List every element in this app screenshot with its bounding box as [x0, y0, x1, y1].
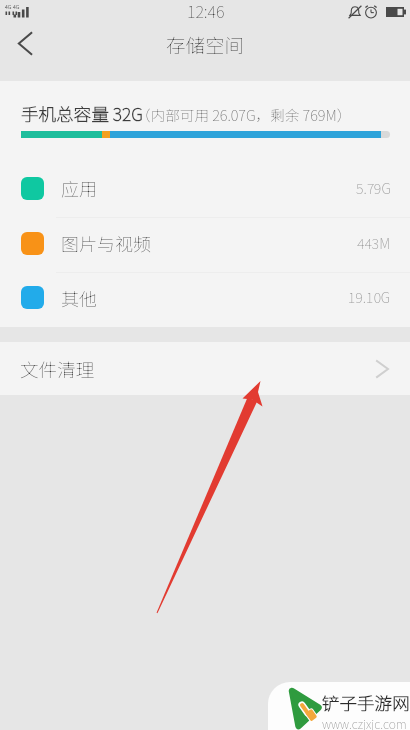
staticText: 存储空间: [166, 30, 245, 58]
staticText: 443M: [357, 233, 391, 254]
button[interactable]: 其他: [0, 273, 410, 327]
staticText: （内部可用 26.07G，剩余 769M）: [136, 104, 352, 125]
staticText: 手机总容量 32G: [21, 101, 143, 126]
staticText: 19.10G: [348, 287, 391, 308]
staticText: 文件清理: [20, 355, 95, 382]
button[interactable]: 文件清理: [0, 342, 410, 395]
staticText: 4G: [13, 3, 20, 11]
button[interactable]: Back: [0, 25, 49, 62]
button[interactable]: 应用: [0, 163, 410, 218]
staticText: 4G: [5, 3, 12, 11]
staticText: 5.79G: [356, 178, 391, 199]
staticText: 应用: [61, 175, 97, 201]
staticText: 其他: [61, 285, 97, 311]
button[interactable]: 图片与视频: [0, 218, 410, 273]
staticText: www.czjxjc.com: [322, 715, 407, 730]
staticText: 图片与视频: [61, 230, 151, 256]
staticText: 12:46: [187, 0, 225, 22]
staticText: 铲子手游网: [322, 690, 410, 715]
